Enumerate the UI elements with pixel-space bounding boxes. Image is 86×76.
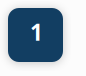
button[interactable]: 1 — [8, 8, 63, 62]
staticText: 1 — [30, 17, 43, 47]
